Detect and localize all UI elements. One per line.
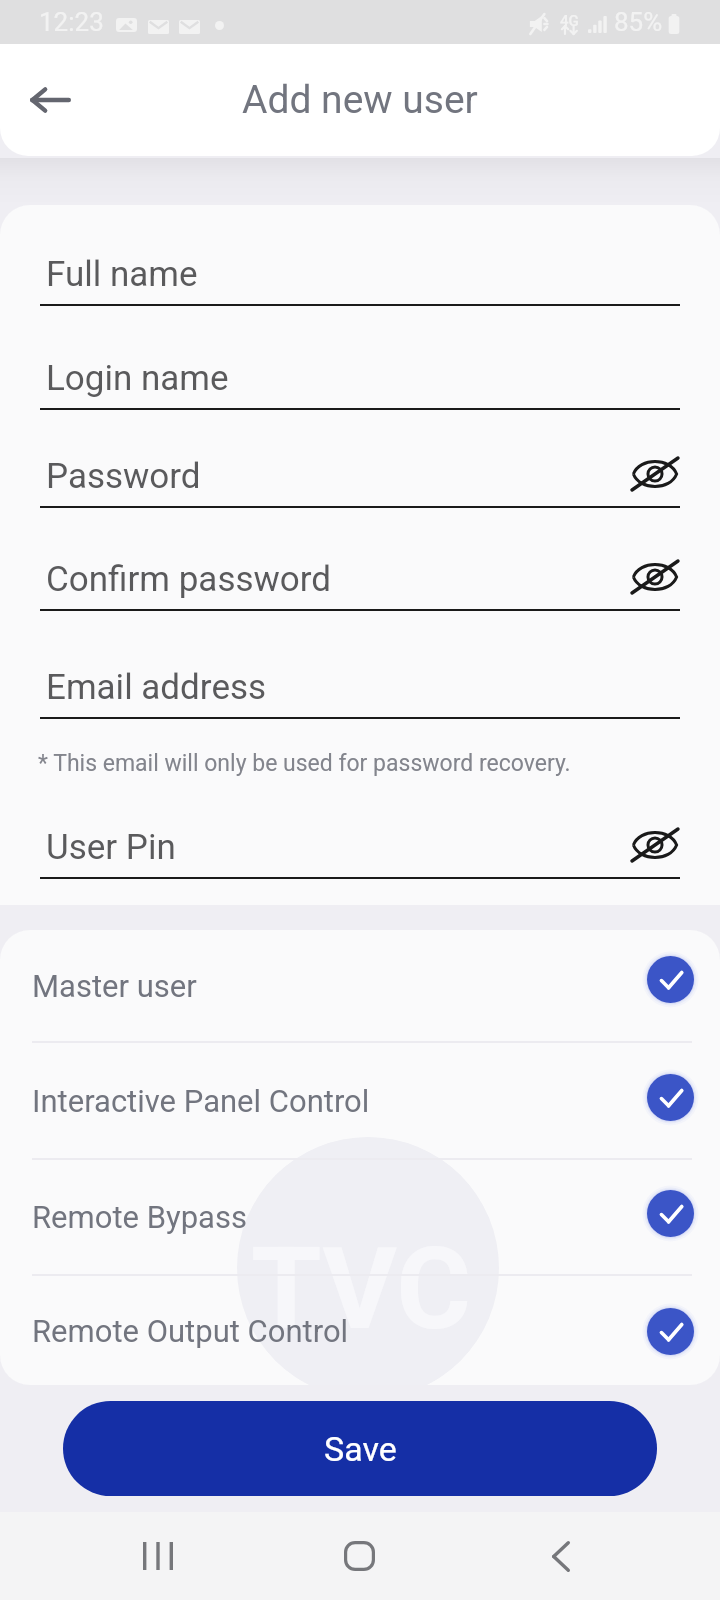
button[interactable]: Back xyxy=(521,1526,601,1586)
button[interactable]: Master user xyxy=(0,930,720,1041)
staticText: 12:23 xyxy=(39,7,104,37)
button[interactable]: Save xyxy=(63,1401,657,1496)
staticText: Full name xyxy=(46,254,198,295)
button[interactable]: Remote Bypass xyxy=(0,1160,720,1274)
staticText: Interactive Panel Control xyxy=(32,1083,370,1119)
button[interactable]: Toggle password visibility xyxy=(629,819,681,871)
staticText: Remote Bypass xyxy=(32,1199,247,1235)
button[interactable]: Home xyxy=(319,1526,399,1586)
button[interactable]: Toggle password visibility xyxy=(629,448,681,500)
button[interactable]: Interactive Panel Control xyxy=(0,1043,720,1158)
button[interactable]: Remote Output Control xyxy=(0,1276,720,1385)
staticText: Confirm password xyxy=(46,559,332,600)
staticText: Email address xyxy=(46,667,267,708)
staticText: 4G xyxy=(560,12,579,30)
button[interactable]: Toggle password visibility xyxy=(629,551,681,603)
staticText: Remote Output Control xyxy=(32,1313,349,1349)
staticText: User Pin xyxy=(46,827,176,868)
staticText: Master user xyxy=(32,968,197,1004)
button[interactable]: Recents xyxy=(117,1526,197,1586)
staticText: 85% xyxy=(614,7,663,37)
button[interactable]: Back xyxy=(18,68,82,132)
staticText: * This email will only be used for passw… xyxy=(38,750,571,777)
staticText: Login name xyxy=(46,358,229,399)
staticText: Add new user xyxy=(242,77,478,123)
staticText: TVC xyxy=(251,1222,471,1356)
staticText: Save xyxy=(324,1429,397,1469)
staticText: Password xyxy=(46,456,201,497)
